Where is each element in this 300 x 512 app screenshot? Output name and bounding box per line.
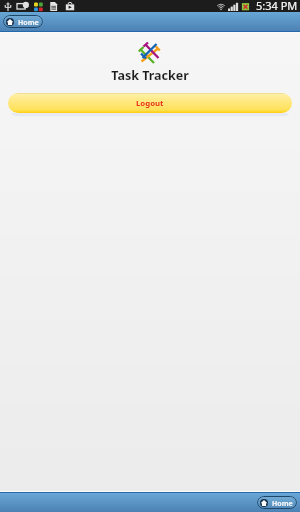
staticText: Task Tracker: [0, 67, 300, 84]
staticText: Logout: [136, 98, 164, 109]
staticText: 5:34 PM: [256, 0, 298, 10]
staticText: Home: [18, 18, 39, 28]
staticText: Home: [272, 499, 293, 509]
button[interactable]: Logout: [8, 93, 292, 113]
button[interactable]: Home: [3, 15, 43, 28]
button[interactable]: Home: [257, 496, 297, 509]
